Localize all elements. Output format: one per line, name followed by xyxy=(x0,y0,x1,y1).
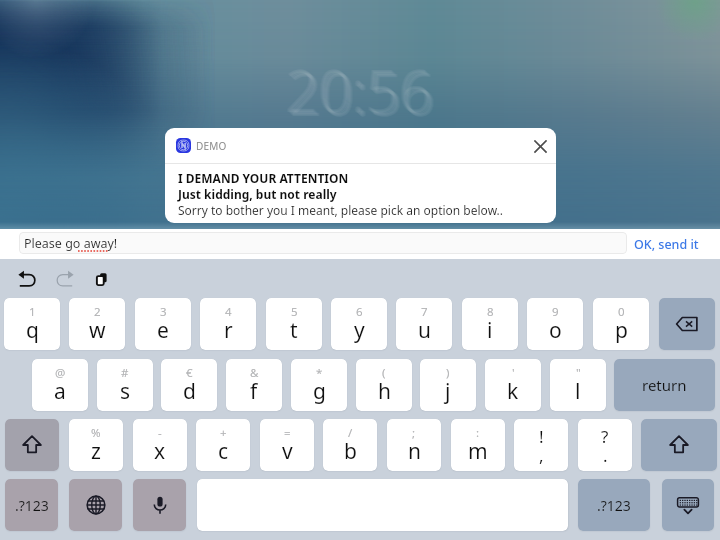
button[interactable]: - xyxy=(133,419,187,471)
staticText: ' xyxy=(512,365,515,381)
button[interactable]: # xyxy=(97,359,153,411)
staticText: e xyxy=(157,316,169,345)
staticText: w xyxy=(89,316,106,345)
button[interactable]: * xyxy=(291,359,347,411)
staticText: 20:56 xyxy=(290,54,437,133)
staticText: j xyxy=(445,377,451,406)
button[interactable]: OK, send it xyxy=(634,229,699,259)
staticText: o xyxy=(549,316,562,345)
staticText: % xyxy=(91,425,101,441)
button[interactable]: Please go away! xyxy=(19,232,627,254)
staticText: r xyxy=(224,316,233,345)
staticText: ; xyxy=(412,425,416,441)
button[interactable]: 0 xyxy=(593,298,649,350)
button[interactable]: 1 xyxy=(4,298,60,350)
staticText: 5 xyxy=(291,304,298,320)
staticText: q xyxy=(26,316,39,345)
button[interactable]: 3 xyxy=(135,298,191,350)
staticText: .?123 xyxy=(597,496,631,515)
staticText: 20:56 xyxy=(286,51,433,130)
staticText: Please go away! xyxy=(24,235,118,252)
staticText: g xyxy=(313,377,326,406)
staticText: 2 xyxy=(94,304,101,320)
button[interactable]: " xyxy=(550,359,606,411)
button[interactable]: Close notification xyxy=(526,132,554,160)
staticText: - xyxy=(158,425,162,441)
button[interactable]: .?123 xyxy=(5,479,58,531)
staticText: 1 xyxy=(29,304,36,320)
staticText: y xyxy=(354,316,365,345)
button[interactable]: 7 xyxy=(396,298,452,350)
staticText: 8 xyxy=(487,304,494,320)
staticText: d xyxy=(183,377,196,406)
staticText: 20:56 xyxy=(287,52,434,131)
staticText: 20:56 xyxy=(284,50,431,129)
staticText: 6 xyxy=(356,304,363,320)
staticText: 3 xyxy=(160,304,167,320)
button[interactable]: return xyxy=(614,359,715,411)
button[interactable]: & xyxy=(226,359,282,411)
staticText: . xyxy=(603,444,608,467)
staticText: : xyxy=(476,425,480,441)
button[interactable]: Undo xyxy=(12,264,42,294)
staticText: ( xyxy=(382,365,386,381)
button[interactable]: Paste xyxy=(88,264,118,294)
staticText: return xyxy=(642,375,687,395)
button[interactable]: 9 xyxy=(527,298,583,350)
staticText: * xyxy=(316,365,323,381)
button[interactable]: Shift xyxy=(5,419,59,471)
button[interactable]: + xyxy=(196,419,250,471)
staticText: & xyxy=(250,365,259,381)
button[interactable]: ! xyxy=(514,419,568,471)
button[interactable]: Hide keyboard xyxy=(662,479,714,531)
staticText: € xyxy=(186,365,193,381)
staticText: + xyxy=(220,425,227,441)
button[interactable]: = xyxy=(260,419,314,471)
staticText: f xyxy=(250,377,258,406)
button[interactable]: 5 xyxy=(266,298,322,350)
staticText: 20:56 xyxy=(285,50,432,129)
staticText: Sorry to bother you I meant, please pick… xyxy=(178,202,504,218)
button[interactable]: ? xyxy=(578,419,632,471)
button[interactable]: Backspace xyxy=(659,298,715,350)
staticText: DEMO xyxy=(196,139,227,153)
staticText: h xyxy=(378,377,391,406)
button[interactable]: 4 xyxy=(200,298,256,350)
button[interactable]: : xyxy=(451,419,505,471)
staticText: 9 xyxy=(552,304,559,320)
button[interactable]: ) xyxy=(420,359,476,411)
button[interactable]: ; xyxy=(387,419,441,471)
button[interactable]: / xyxy=(323,419,377,471)
button[interactable]: Voice input xyxy=(133,479,186,531)
staticText: ) xyxy=(446,365,450,381)
staticText: , xyxy=(539,444,544,467)
button[interactable]: € xyxy=(161,359,217,411)
staticText: 7 xyxy=(421,304,428,320)
button[interactable]: .?123 xyxy=(578,479,650,531)
staticText: v xyxy=(282,437,293,466)
staticText: p xyxy=(615,316,628,345)
staticText: " xyxy=(576,365,581,381)
button[interactable]: Change keyboard xyxy=(69,479,122,531)
staticText: I DEMAND YOUR ATTENTION xyxy=(178,170,349,186)
button[interactable]: ' xyxy=(485,359,541,411)
button[interactable]: Redo xyxy=(50,264,80,294)
staticText: 20:56 xyxy=(289,54,436,133)
button[interactable]: % xyxy=(69,419,123,471)
staticText: z xyxy=(91,437,101,466)
button[interactable]: ( xyxy=(356,359,412,411)
button[interactable]: @ xyxy=(32,359,88,411)
staticText: OK, send it xyxy=(634,236,699,253)
staticText: t xyxy=(290,316,298,345)
staticText: Just kidding, but not really xyxy=(178,186,337,202)
staticText: @ xyxy=(55,365,66,381)
staticText: k xyxy=(507,377,519,406)
button[interactable]: 6 xyxy=(331,298,387,350)
button[interactable]: 2 xyxy=(69,298,125,350)
button[interactable]: Shift xyxy=(641,419,717,471)
button[interactable]: 8 xyxy=(462,298,518,350)
staticText: s xyxy=(120,377,131,406)
staticText: x xyxy=(154,437,166,466)
staticText: l xyxy=(575,377,581,406)
